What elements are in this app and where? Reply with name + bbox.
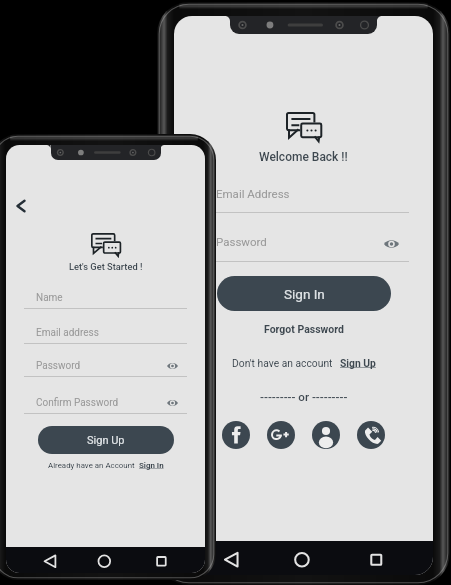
button[interactable]: Phone	[357, 421, 385, 449]
button[interactable]: Sign Up	[38, 426, 174, 454]
staticText: Sign Up	[87, 434, 125, 447]
staticText: Email Address	[216, 187, 290, 200]
button[interactable]: Sign In	[139, 461, 164, 470]
staticText: Welcome Back !!	[259, 150, 348, 164]
staticText: Sign In	[284, 286, 325, 302]
button[interactable]: Google Plus	[267, 421, 295, 449]
staticText: Name	[36, 292, 63, 304]
button[interactable]: Email Address	[199, 183, 409, 213]
button[interactable]: Back	[13, 198, 29, 214]
staticText: Email address	[36, 327, 99, 339]
other: Show password	[167, 362, 178, 370]
other: Show password	[384, 239, 399, 249]
button[interactable]: Facebook	[222, 421, 250, 449]
button[interactable]: Account	[312, 421, 340, 449]
button[interactable]: System navigation bar	[174, 541, 433, 575]
button[interactable]: System navigation bar	[6, 547, 205, 573]
staticText: Password	[36, 360, 81, 372]
staticText: Don't have an account	[232, 357, 333, 369]
button[interactable]: Confirm Password	[24, 391, 187, 414]
button[interactable]: Email address	[24, 321, 187, 344]
staticText: Confirm Password	[36, 397, 119, 409]
button[interactable]: Sign Up	[340, 357, 376, 369]
button[interactable]: Password	[199, 232, 409, 262]
button[interactable]: Password	[24, 354, 187, 377]
button[interactable]: Forgot Password	[264, 323, 344, 335]
other: Show password	[167, 399, 178, 407]
staticText: Already have an Account	[48, 461, 135, 470]
button[interactable]: Sign In	[217, 276, 391, 311]
button[interactable]: Name	[24, 286, 187, 309]
staticText: Let's Get Started !	[69, 261, 143, 272]
staticText: --------- or ---------	[260, 390, 348, 404]
staticText: Password	[216, 235, 267, 248]
